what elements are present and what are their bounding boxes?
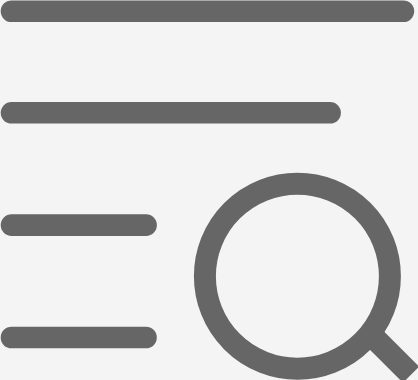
button[interactable]: Search list — [0, 0, 418, 380]
